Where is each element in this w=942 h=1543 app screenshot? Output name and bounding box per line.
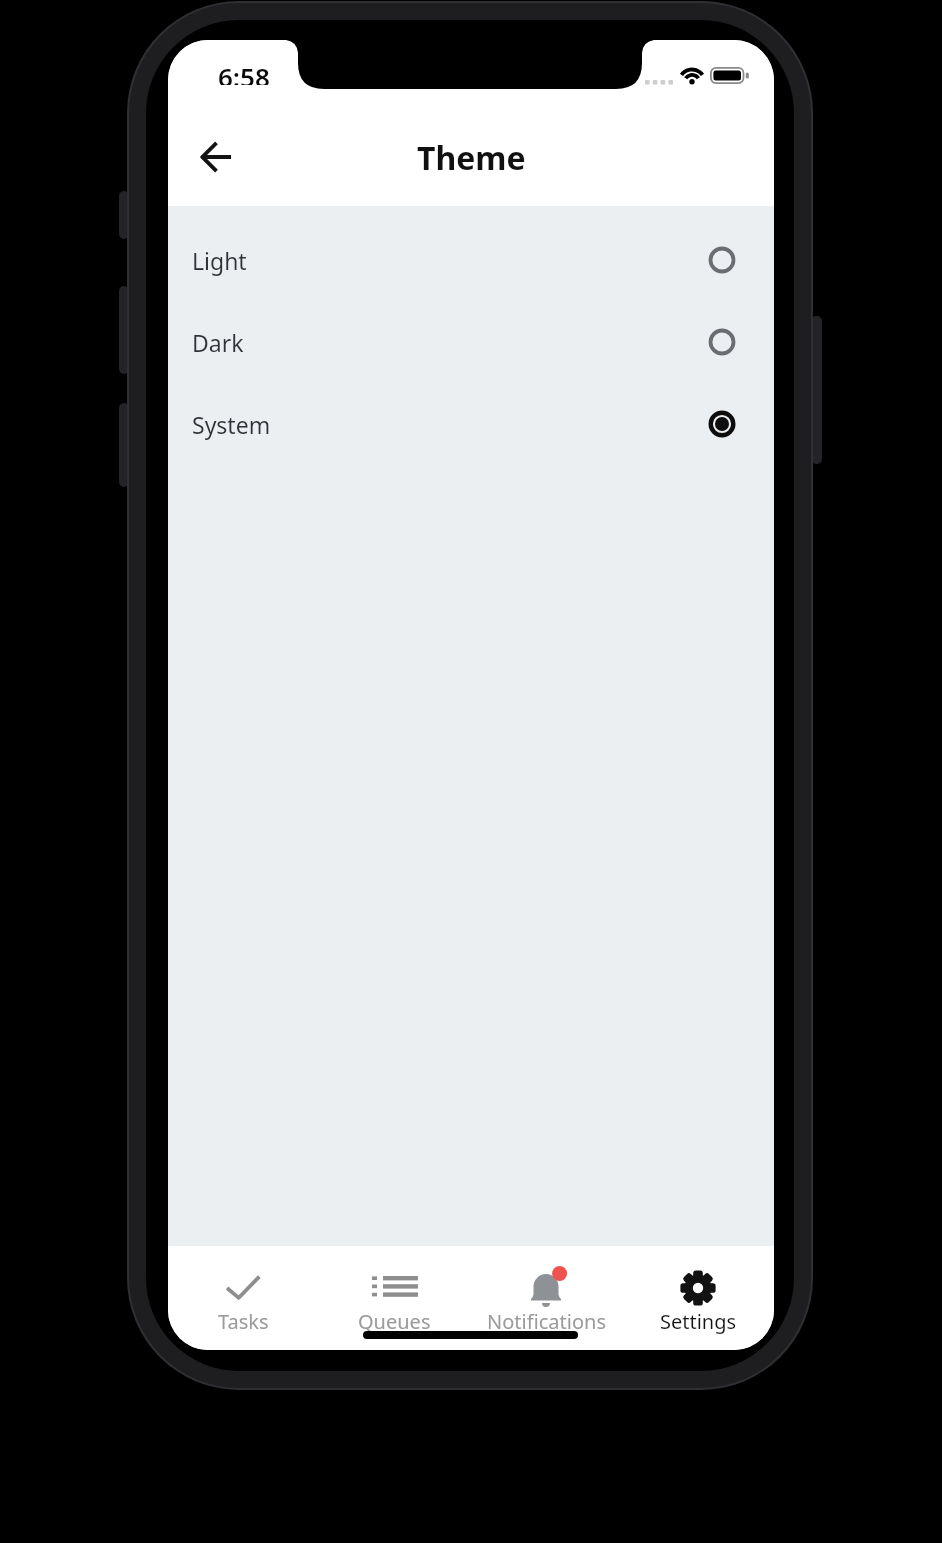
button[interactable]: Dark [168, 301, 774, 383]
staticText: Light [192, 245, 247, 276]
staticText: Settings [660, 1308, 737, 1335]
staticText: Dark [192, 327, 244, 358]
staticText: 6:58 [218, 59, 270, 85]
staticText: Tasks [218, 1308, 269, 1335]
button[interactable]: Tasks [168, 1246, 319, 1350]
button[interactable]: Notifications [470, 1246, 622, 1350]
button[interactable]: Queues [319, 1246, 470, 1350]
staticText: Notifications [487, 1308, 606, 1335]
button[interactable]: Settings [622, 1246, 774, 1350]
staticText: System [192, 409, 271, 440]
button[interactable]: System [168, 383, 774, 465]
button[interactable] [192, 133, 240, 181]
staticText: Queues [358, 1308, 431, 1335]
button[interactable]: Light [168, 219, 774, 301]
staticText: Theme [417, 136, 526, 178]
